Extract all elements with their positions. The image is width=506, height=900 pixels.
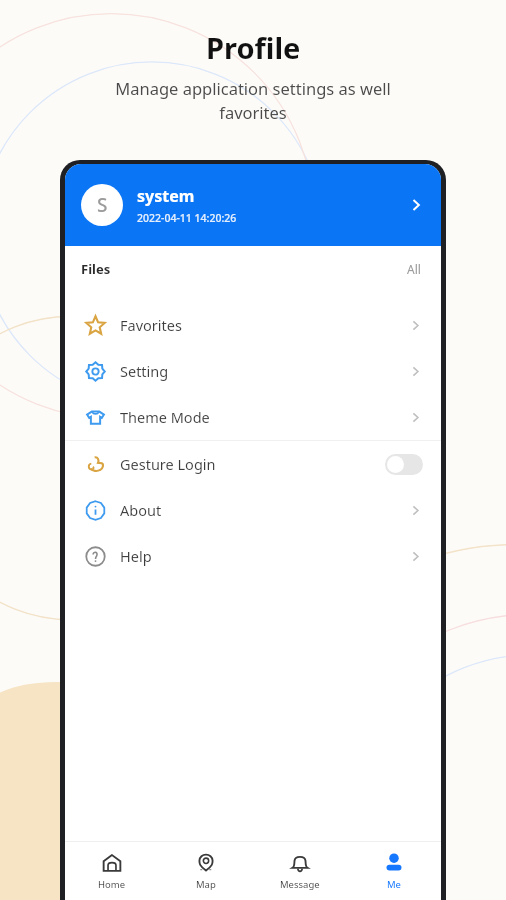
button[interactable]: Setting — [65, 348, 441, 394]
staticText: Home — [98, 878, 126, 891]
button[interactable]: Me — [347, 842, 441, 900]
staticText: Profile — [206, 28, 301, 67]
button[interactable]: Message — [253, 842, 347, 900]
staticText: Help — [120, 546, 152, 566]
staticText: S — [97, 192, 108, 218]
button[interactable]: Map — [159, 842, 253, 900]
staticText: Files — [81, 260, 111, 278]
button[interactable]: Home — [65, 842, 159, 900]
staticText: 2022-04-11 14:20:26 — [137, 211, 237, 225]
staticText: Theme Mode — [120, 407, 210, 427]
staticText: Gesture Login — [120, 454, 216, 474]
button[interactable]: Gesture Login — [65, 441, 441, 487]
staticText: Map — [196, 878, 216, 891]
staticText: Me — [387, 878, 401, 891]
button[interactable]: Favorites — [65, 302, 441, 348]
staticText: All — [407, 261, 421, 277]
staticText: Favorites — [120, 315, 182, 335]
staticText: About — [120, 500, 162, 520]
staticText: Setting — [120, 361, 169, 381]
staticText: system — [137, 185, 195, 207]
staticText: Message — [280, 878, 320, 891]
button[interactable]: S — [65, 164, 441, 246]
button[interactable]: About — [65, 487, 441, 533]
button[interactable]: Theme Mode — [65, 394, 441, 440]
staticText: Manage application settings as well favo… — [115, 77, 391, 124]
button[interactable]: Gesture Login toggle — [385, 454, 423, 475]
button[interactable]: All — [403, 257, 425, 281]
button[interactable]: Help — [65, 533, 441, 579]
